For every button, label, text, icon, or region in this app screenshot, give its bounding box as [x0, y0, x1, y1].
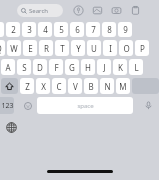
button[interactable]: 2: [6, 22, 20, 37]
button[interactable]: Y: [71, 40, 85, 56]
staticText: F: [54, 62, 59, 73]
button[interactable]: A: [1, 59, 15, 75]
button[interactable]: C: [52, 78, 66, 94]
button[interactable]: W: [7, 40, 21, 56]
button[interactable]: 123: [0, 97, 14, 114]
button[interactable]: K: [113, 59, 127, 75]
staticText: I: [109, 43, 112, 54]
button[interactable]: Audio: [73, 5, 84, 16]
button[interactable]: Emoji: [21, 99, 34, 112]
button[interactable]: M: [116, 78, 130, 94]
button[interactable]: 8: [102, 22, 116, 37]
staticText: 123: [1, 101, 14, 111]
button[interactable]: Z: [20, 78, 34, 94]
button[interactable]: U: [87, 40, 101, 56]
button[interactable]: Camera: [111, 5, 122, 16]
staticText: Z: [25, 81, 30, 92]
button[interactable]: 7: [86, 22, 100, 37]
button[interactable]: Shift: [1, 78, 18, 94]
button[interactable]: F: [49, 59, 63, 75]
staticText: J: [103, 62, 106, 73]
staticText: K: [118, 62, 123, 73]
button[interactable]: T: [55, 40, 69, 56]
button[interactable]: J: [97, 59, 111, 75]
staticText: space: [77, 102, 94, 110]
staticText: P: [140, 43, 145, 54]
button[interactable]: X: [36, 78, 50, 94]
staticText: B: [88, 81, 94, 92]
button[interactable]: space: [37, 97, 133, 114]
button[interactable]: I: [103, 40, 117, 56]
staticText: G: [69, 62, 75, 73]
staticText: 3: [27, 24, 32, 35]
button[interactable]: 5: [54, 22, 68, 37]
staticText: V: [73, 81, 78, 92]
button[interactable]: Photos: [92, 5, 103, 16]
button[interactable]: E: [23, 40, 37, 56]
button[interactable]: 4: [38, 22, 52, 37]
button[interactable]: Clipboard: [130, 5, 141, 16]
staticText: 7: [91, 24, 96, 35]
staticText: T: [60, 43, 65, 54]
staticText: 4: [43, 24, 48, 35]
staticText: 6: [75, 24, 80, 35]
button[interactable]: Search: [17, 4, 63, 17]
button[interactable]: Dictate: [137, 97, 159, 114]
button[interactable]: D: [33, 59, 47, 75]
staticText: E: [28, 43, 33, 54]
button[interactable]: S: [17, 59, 31, 75]
button[interactable]: G: [65, 59, 79, 75]
staticText: 8: [107, 24, 112, 35]
staticText: R: [44, 43, 49, 54]
staticText: C: [56, 81, 62, 92]
button[interactable]: [0, 22, 4, 37]
button[interactable]: Change keyboard: [4, 120, 18, 134]
button[interactable]: 6: [70, 22, 84, 37]
staticText: M: [119, 81, 127, 92]
staticText: Search: [29, 7, 48, 15]
staticText: Q: [0, 43, 2, 54]
staticText: Y: [76, 43, 81, 54]
staticText: L: [134, 62, 139, 73]
button[interactable]: R: [39, 40, 53, 56]
button[interactable]: V: [68, 78, 82, 94]
button[interactable]: L: [129, 59, 143, 75]
staticText: 2: [11, 24, 16, 35]
staticText: U: [91, 43, 97, 54]
staticText: 5: [59, 24, 64, 35]
staticText: D: [37, 62, 43, 73]
staticText: 9: [123, 24, 128, 35]
staticText: N: [104, 81, 111, 92]
staticText: A: [5, 62, 11, 73]
button[interactable]: 3: [22, 22, 36, 37]
button[interactable]: N: [100, 78, 114, 94]
staticText: S: [22, 62, 27, 73]
button[interactable]: 9: [118, 22, 132, 37]
staticText: W: [10, 43, 18, 54]
staticText: X: [41, 81, 46, 92]
button[interactable]: O: [119, 40, 133, 56]
staticText: O: [123, 43, 130, 54]
button[interactable]: H: [81, 59, 95, 75]
button[interactable]: P: [135, 40, 149, 56]
button[interactable]: B: [84, 78, 98, 94]
staticText: H: [85, 62, 91, 73]
button[interactable]: Q: [0, 40, 5, 56]
